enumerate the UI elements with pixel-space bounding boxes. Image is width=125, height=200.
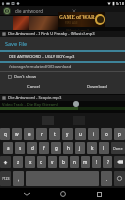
staticText: t — [54, 131, 56, 137]
staticText: Don't show — [14, 74, 37, 80]
button[interactable]: s — [15, 142, 25, 154]
button[interactable]: w — [12, 128, 22, 140]
button[interactable]: Download — [68, 82, 125, 92]
staticText: x — [29, 159, 32, 165]
staticText: Video Track - Die Boy (Stream) — [2, 102, 58, 107]
button[interactable]: t — [49, 128, 60, 140]
button[interactable]: ! — [92, 156, 101, 168]
staticText: n — [73, 159, 76, 165]
button[interactable]: y — [62, 128, 73, 140]
button[interactable]: Emoji — [114, 171, 125, 186]
button[interactable]: Shift — [0, 156, 11, 168]
staticText: Cancel — [27, 84, 41, 90]
staticText: s — [19, 145, 22, 151]
staticText: 5:18 — [116, 1, 124, 6]
staticText: m — [83, 159, 88, 165]
staticText: c — [40, 159, 43, 165]
staticText: ? — [107, 159, 109, 165]
button[interactable]: o — [101, 128, 112, 140]
button[interactable]: , — [13, 171, 24, 186]
button[interactable]: . — [101, 171, 112, 186]
staticText: d — [31, 145, 34, 151]
button[interactable]: c — [37, 156, 46, 168]
button[interactable]: g — [51, 142, 61, 154]
button[interactable]: n — [70, 156, 79, 168]
staticText: w — [15, 131, 19, 137]
staticText: q — [4, 131, 7, 137]
staticText: v — [51, 159, 54, 165]
button[interactable]: k — [87, 142, 97, 154]
staticText: Save File — [5, 40, 28, 47]
staticText: k — [91, 145, 94, 151]
staticText: l — [103, 145, 105, 151]
button[interactable]: Die Antwoord - I Fink U Freaky - (Music)… — [0, 31, 125, 37]
staticText: g — [55, 145, 58, 151]
button[interactable]: ?123 — [0, 171, 11, 186]
staticText: GAME of WAR — [59, 14, 95, 21]
staticText: f — [43, 145, 45, 151]
button[interactable]: u — [75, 128, 86, 140]
button[interactable] — [29, 16, 58, 30]
button[interactable] — [63, 113, 94, 127]
staticText: p — [118, 131, 121, 137]
staticText: /storage/emulated/0/Download — [9, 64, 72, 70]
button[interactable]: h — [63, 142, 73, 154]
button[interactable]: Recents — [87, 188, 111, 200]
staticText: FIRE AGE — [65, 21, 78, 25]
button[interactable]: die antwoord — [0, 6, 58, 15]
button[interactable]: Done — [111, 142, 125, 154]
button[interactable]: GAME of WAR — [58, 12, 105, 27]
button[interactable]: Backspace — [114, 156, 125, 168]
button[interactable]: r — [36, 128, 47, 140]
staticText: , — [18, 176, 20, 182]
button[interactable]: a — [3, 142, 13, 154]
staticText: (Music).mp3 — [66, 28, 89, 33]
staticText: . — [106, 176, 108, 182]
button[interactable]: m — [81, 156, 90, 168]
staticText: DIE ANTWOORD - UGLY BOY.mp3 — [9, 54, 75, 60]
staticText: b — [62, 159, 65, 165]
button[interactable]: v — [48, 156, 57, 168]
staticText: ! — [96, 159, 98, 165]
staticText: die antwoord — [15, 8, 44, 14]
button[interactable]: b — [59, 156, 68, 168]
button[interactable]: Don't show — [0, 73, 40, 81]
button[interactable]: q — [0, 128, 10, 140]
button[interactable]: j — [75, 142, 85, 154]
button[interactable]: /storage/emulated/0/Download — [0, 62, 125, 71]
staticText: h — [67, 145, 70, 151]
staticText: a — [7, 145, 10, 151]
button[interactable]: x — [25, 156, 35, 168]
staticText: i — [93, 131, 95, 137]
staticText: z — [17, 159, 20, 165]
staticText: r — [41, 131, 43, 137]
button[interactable]: Back — [15, 188, 39, 200]
staticText: j — [79, 145, 81, 151]
button[interactable]: l — [99, 142, 109, 154]
button[interactable]: p — [114, 128, 125, 140]
button[interactable]: f — [39, 142, 49, 154]
button[interactable]: i — [88, 128, 99, 140]
button[interactable]: e — [24, 128, 34, 140]
button[interactable]: DIE ANTWOORD - UGLY BOY.mp3 — [0, 52, 125, 61]
staticText: Die Antwoord - I Fink U Freaky - (Music)… — [8, 31, 95, 37]
staticText: Die Antwoord - Scopie.mp3 — [8, 95, 62, 101]
button[interactable] — [32, 113, 63, 127]
staticText: e — [28, 131, 31, 137]
staticText: Download — [87, 84, 107, 90]
button[interactable]: Cancel — [0, 82, 68, 92]
button[interactable]: ? — [103, 156, 112, 168]
button[interactable]: Seek — [73, 101, 79, 107]
button[interactable]: d — [27, 142, 37, 154]
button[interactable]: Close ad — [68, 6, 80, 15]
button[interactable]: Home — [51, 188, 75, 200]
button[interactable]: Die Antwoord - Scopie.mp3 — [0, 95, 125, 101]
staticText: ?123 — [2, 176, 10, 181]
button[interactable] — [13, 16, 29, 30]
staticText: u — [79, 131, 82, 137]
button[interactable]: z — [13, 156, 23, 168]
